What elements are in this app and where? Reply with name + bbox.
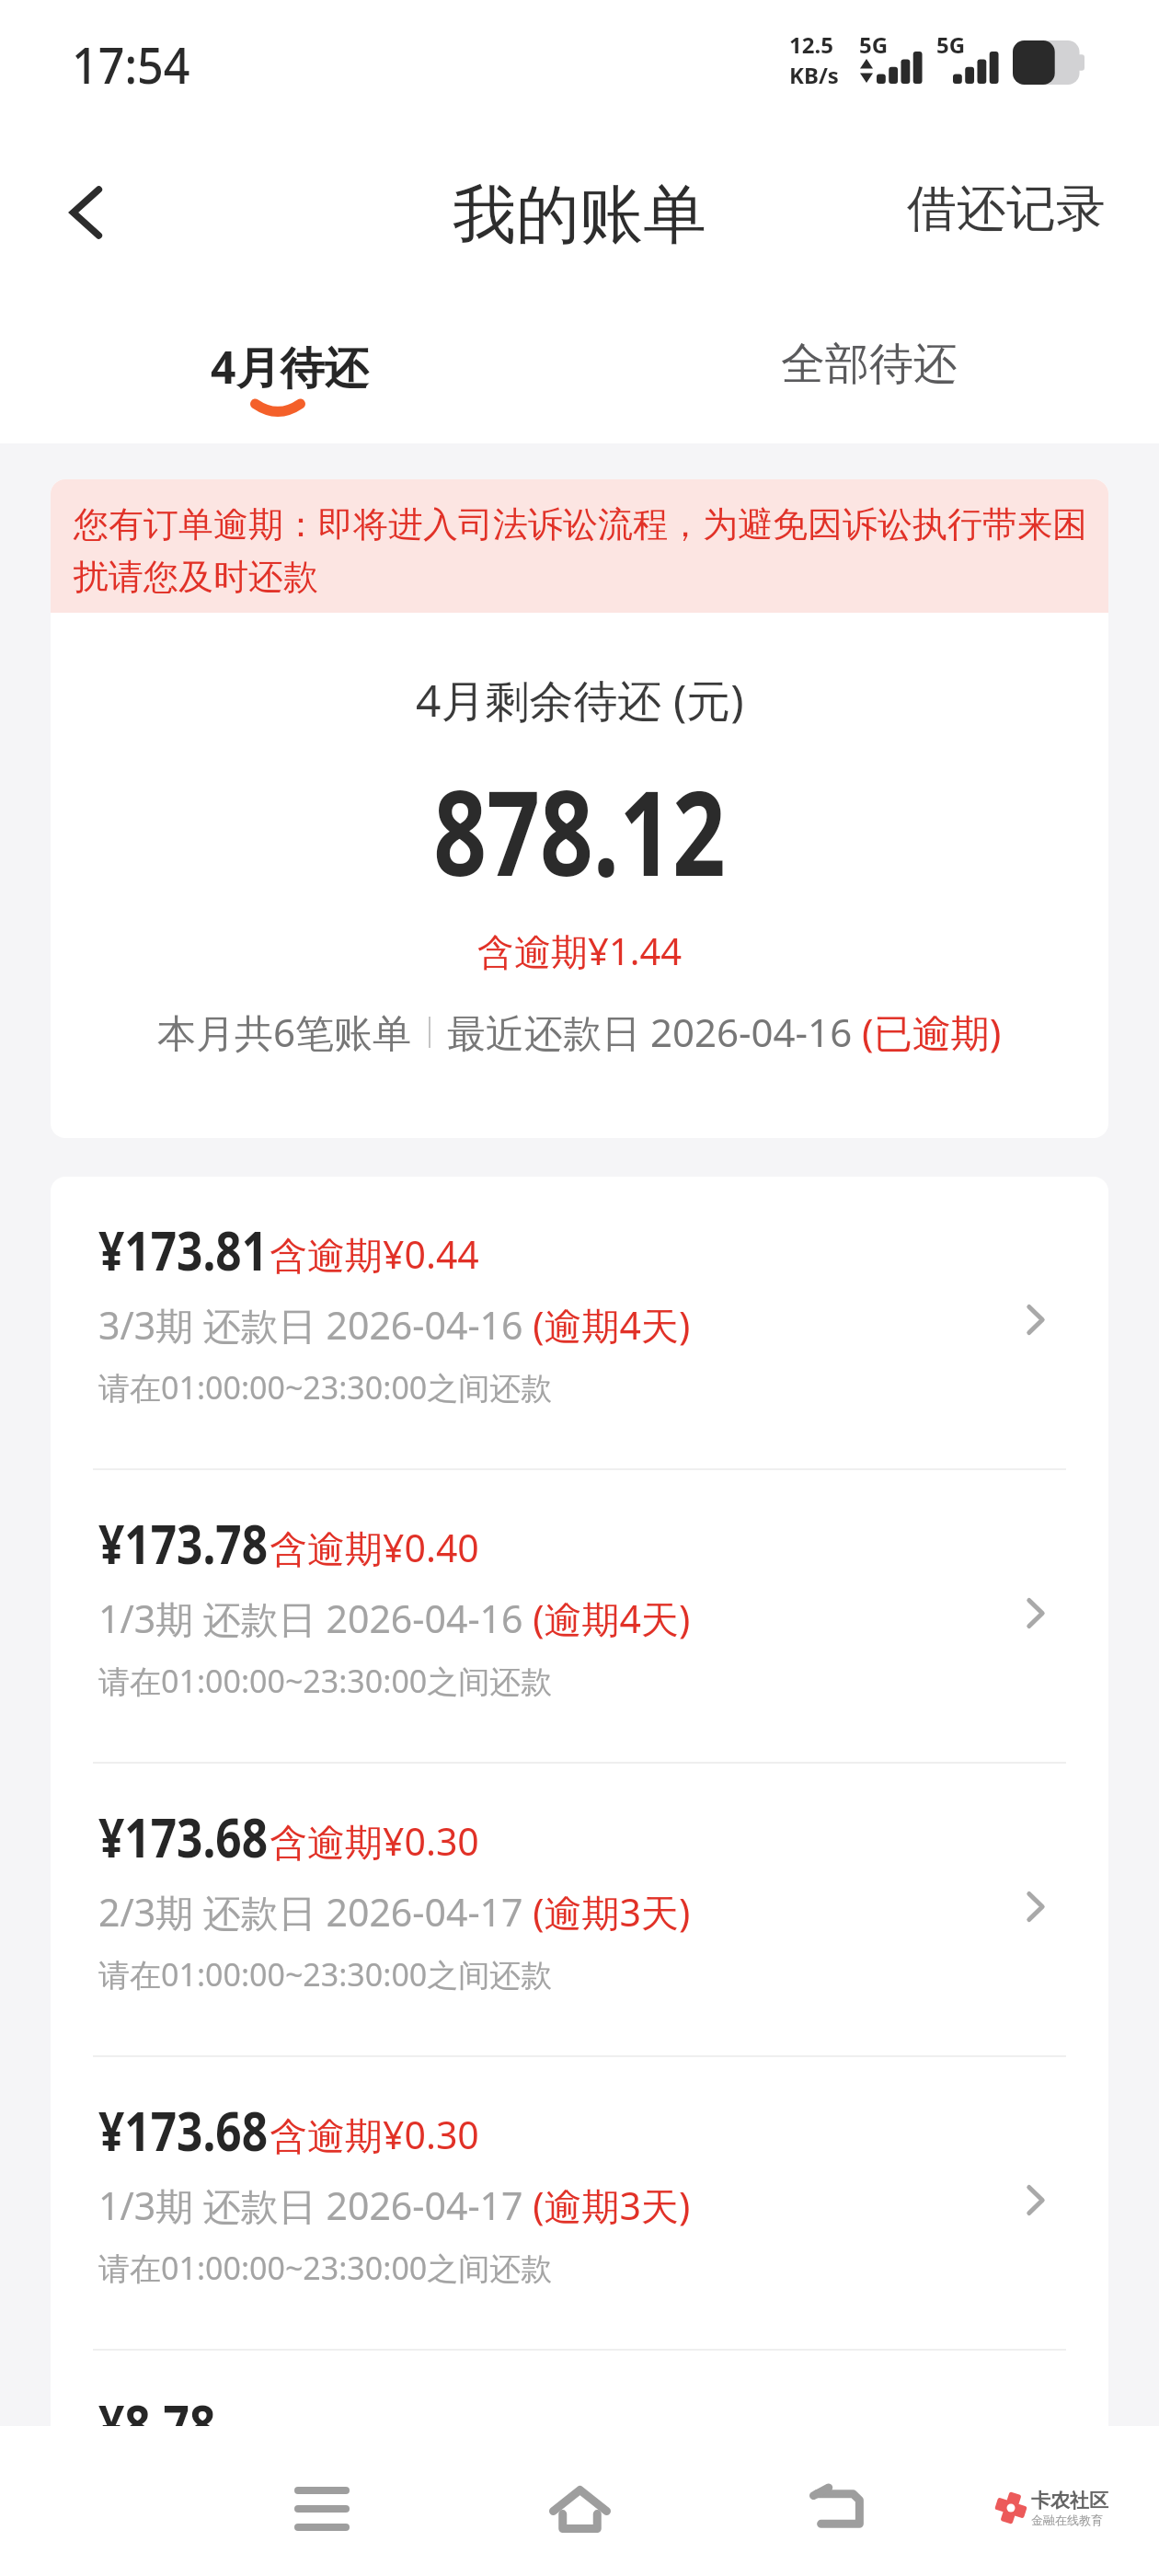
button[interactable]: ¥173.81 (51, 1177, 1108, 1468)
staticText: 卡农社区 (1031, 2489, 1108, 2513)
button[interactable]: ¥173.78 (51, 1470, 1108, 1762)
staticText: 含逾期¥0.30 (270, 1815, 479, 1867)
button[interactable]: Home (515, 2444, 644, 2573)
staticText: 请在01:00:00~23:30:00之间还款 (98, 1366, 553, 1409)
staticText: 878.12 (434, 750, 726, 910)
staticText: 含逾期¥0.30 (270, 2109, 479, 2160)
staticText: 17:54 (72, 30, 191, 98)
staticText: 全部待还 (781, 337, 958, 392)
staticText: ¥173.68 (98, 2093, 268, 2167)
staticText: ¥173.78 (98, 1506, 268, 1580)
button[interactable]: 借还记录 (900, 170, 1113, 247)
staticText: 1/3期 还款日 2026-04-17 (逾期3天) (98, 2179, 691, 2231)
staticText: 含逾期¥0.40 (270, 1522, 479, 1573)
button[interactable]: 全部待还 (579, 0, 1159, 443)
staticText: 我的账单 (453, 176, 706, 256)
staticText: 4月待还 (211, 337, 369, 397)
staticText: 请在01:00:00~23:30:00之间还款 (98, 2247, 553, 2289)
staticText: 含逾期¥1.44 (477, 926, 683, 976)
staticText: 2/3期 还款日 2026-04-17 (逾期3天) (98, 1886, 691, 1938)
staticText: ¥173.68 (98, 1800, 268, 1873)
button[interactable]: Recent apps (258, 2444, 386, 2573)
button[interactable]: ¥173.68 (51, 1764, 1108, 2055)
staticText: 3/3期 还款日 2026-04-16 (逾期4天) (98, 1299, 691, 1351)
staticText: 5G (936, 29, 966, 60)
staticText: 您有订单逾期：即将进入司法诉讼流程，为避免因诉讼执行带来困扰请您及时还款 (74, 502, 1090, 600)
staticText: 最近还款日 2026-04-16 (已逾期) (447, 1006, 1002, 1058)
staticText: ¥173.81 (98, 1213, 268, 1286)
staticText: 12.5 (789, 29, 833, 60)
staticText: 本月共6笔账单 (157, 1006, 412, 1058)
button[interactable]: 4月待还 (0, 0, 579, 443)
staticText: 含逾期¥0.44 (270, 1228, 479, 1280)
button[interactable]: ¥173.68 (51, 2057, 1108, 2349)
staticText: KB/s (789, 60, 839, 90)
staticText: 请在01:00:00~23:30:00之间还款 (98, 1660, 553, 1702)
staticText: 金融在线教育 (1031, 2513, 1103, 2527)
button[interactable]: ¥8.78 (51, 2351, 1108, 2426)
staticText: ¥8.78 (98, 2386, 216, 2426)
button[interactable]: Back (37, 164, 134, 261)
staticText: 5G (859, 29, 889, 60)
staticText: 借还记录 (907, 178, 1106, 240)
staticText: 4月剩余待还 (元) (416, 670, 744, 730)
button[interactable]: Back (773, 2444, 901, 2573)
staticText: 请在01:00:00~23:30:00之间还款 (98, 1953, 553, 1995)
staticText: 1/3期 还款日 2026-04-16 (逾期4天) (98, 1593, 691, 1644)
